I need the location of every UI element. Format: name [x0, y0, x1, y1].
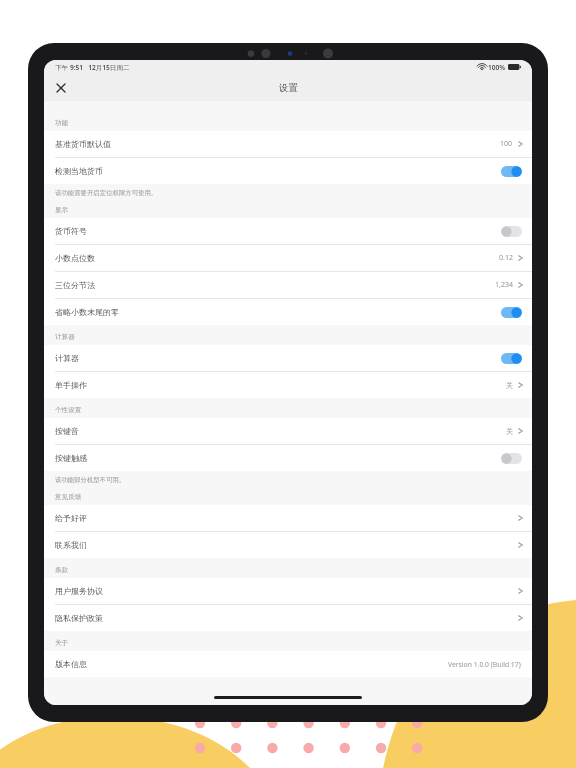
staticText: 计算器 [55, 353, 79, 363]
staticText: 下午 9:51 12月15日周二 [55, 63, 130, 72]
staticText: 货币符号 [55, 226, 87, 236]
staticText: 关 [506, 427, 513, 436]
button[interactable]: 单手操作 [44, 372, 532, 398]
button[interactable]: Close [50, 77, 72, 99]
staticText: 个性设置 [55, 406, 82, 414]
button[interactable]: 检测当地货币 [44, 158, 532, 184]
button[interactable]: 联系我们 [44, 532, 532, 558]
staticText: Version 1.0.0 (Build 17) [448, 660, 521, 669]
staticText: 单手操作 [55, 380, 87, 390]
staticText: 显示 [55, 206, 69, 214]
button[interactable]: 按键触感 [44, 445, 532, 471]
staticText: 该功能部分机型不可用。 [55, 476, 126, 484]
button[interactable]: 计算器 [44, 345, 532, 371]
button[interactable]: 三位分节法 [44, 272, 532, 298]
button[interactable]: 基准货币默认值 [44, 131, 532, 157]
staticText: 该功能需要开启定位权限方可使用。 [55, 189, 158, 197]
button[interactable]: 隐私保护政策 [44, 605, 532, 631]
button[interactable]: Off [501, 226, 522, 237]
staticText: 隐私保护政策 [55, 613, 103, 623]
staticText: 小数点位数 [55, 253, 95, 263]
staticText: 版本信息 [55, 659, 87, 669]
staticText: 关 [506, 381, 513, 390]
button[interactable]: On [501, 307, 522, 318]
button[interactable]: 小数点位数 [44, 245, 532, 271]
button[interactable]: On [501, 166, 522, 177]
button[interactable]: 省略小数末尾的零 [44, 299, 532, 325]
button[interactable]: 按键音 [44, 418, 532, 444]
staticText: 三位分节法 [55, 280, 95, 290]
button[interactable]: 版本信息 [44, 651, 532, 677]
staticText: 功能 [55, 119, 69, 127]
button[interactable]: On [501, 353, 522, 364]
staticText: 意见反馈 [55, 493, 82, 501]
staticText: 按键触感 [55, 453, 87, 463]
button[interactable]: Off [501, 453, 522, 464]
staticText: 1,234 [495, 280, 513, 290]
staticText: 100% [488, 63, 506, 72]
button[interactable]: 货币符号 [44, 218, 532, 244]
button[interactable]: 给予好评 [44, 505, 532, 531]
staticText: 100 [500, 139, 513, 149]
staticText: 给予好评 [55, 513, 87, 523]
button[interactable]: 用户服务协议 [44, 578, 532, 604]
staticText: 检测当地货币 [55, 166, 103, 176]
staticText: 0.12 [499, 253, 513, 263]
staticText: 联系我们 [55, 540, 87, 550]
staticText: 省略小数末尾的零 [55, 307, 119, 317]
staticText: 设置 [279, 82, 298, 94]
staticText: 按键音 [55, 426, 79, 436]
staticText: 计算器 [55, 333, 75, 341]
staticText: 用户服务协议 [55, 586, 103, 596]
staticText: 关于 [55, 639, 69, 647]
staticText: 基准货币默认值 [55, 139, 111, 149]
staticText: 条款 [55, 566, 69, 574]
